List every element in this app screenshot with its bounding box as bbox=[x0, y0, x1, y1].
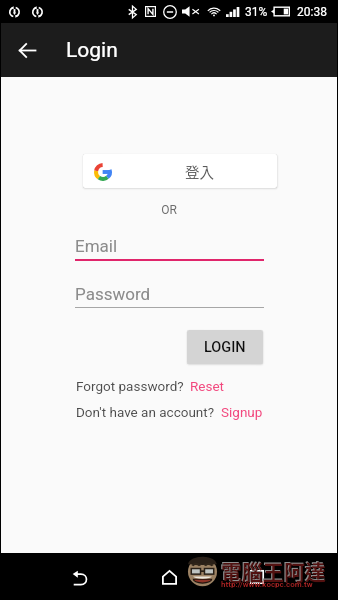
staticText: Password bbox=[75, 284, 151, 304]
staticText: Email bbox=[75, 236, 118, 256]
staticText: 登入 bbox=[185, 161, 214, 182]
button[interactable]: Home bbox=[146, 554, 192, 600]
staticText: http://www.kocpc.com.tw bbox=[221, 580, 313, 589]
button[interactable]: 登入 bbox=[83, 154, 277, 188]
button[interactable]: Navigate up bbox=[9, 32, 46, 69]
staticText: Don't have an account? bbox=[76, 404, 215, 420]
staticText: 31% bbox=[245, 5, 268, 19]
button[interactable]: Signup bbox=[221, 404, 263, 420]
staticText: Reset bbox=[190, 378, 225, 394]
button[interactable]: Back bbox=[56, 554, 102, 600]
staticText: OR bbox=[0, 203, 338, 217]
button[interactable]: LOGIN bbox=[187, 330, 263, 364]
button[interactable]: Recents bbox=[234, 554, 280, 600]
staticText: Forgot password? bbox=[76, 378, 184, 394]
staticText: 電腦王阿達 bbox=[220, 555, 325, 585]
staticText: Login bbox=[66, 38, 118, 63]
staticText: 20:38 bbox=[297, 5, 327, 19]
staticText: Signup bbox=[221, 404, 263, 420]
staticText: 電腦王阿達 bbox=[221, 556, 326, 586]
staticText: LOGIN bbox=[204, 339, 246, 356]
button[interactable]: Reset bbox=[190, 378, 225, 394]
